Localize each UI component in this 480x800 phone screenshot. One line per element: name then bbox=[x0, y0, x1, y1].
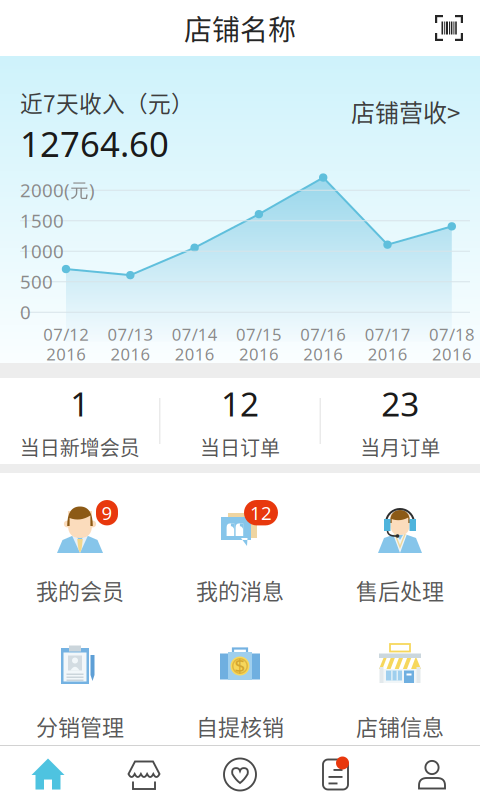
button[interactable]: 12 bbox=[160, 473, 320, 609]
staticText: 07/17 bbox=[365, 323, 411, 346]
staticText: 07/15 bbox=[236, 323, 282, 346]
staticText: 2000(元) bbox=[20, 177, 95, 203]
button[interactable]: $ bbox=[160, 609, 320, 745]
staticText: 2016 bbox=[46, 343, 86, 365]
staticText: 07/18 bbox=[429, 323, 475, 346]
staticText: 店铺名称 bbox=[184, 8, 296, 48]
staticText: 12 bbox=[250, 500, 272, 525]
staticText: 07/14 bbox=[172, 323, 218, 346]
staticText: 12 bbox=[221, 381, 259, 426]
staticText: 07/12 bbox=[43, 323, 89, 346]
staticText: 店铺营收> bbox=[351, 94, 460, 129]
staticText: 07/16 bbox=[300, 323, 346, 346]
staticText: 当日新增会员 bbox=[20, 432, 140, 461]
staticText: 2016 bbox=[239, 343, 279, 365]
staticText: 500 bbox=[20, 269, 53, 294]
button[interactable]: 订单 bbox=[288, 746, 384, 800]
staticText: 07/13 bbox=[107, 323, 153, 346]
staticText: $ bbox=[234, 653, 245, 678]
button[interactable]: 我的 bbox=[384, 746, 480, 800]
staticText: 分销管理 bbox=[36, 710, 124, 742]
staticText: 店铺信息 bbox=[356, 710, 444, 742]
button[interactable]: 首页 bbox=[0, 746, 96, 800]
button[interactable]: 售后处理 bbox=[320, 473, 480, 609]
staticText: 2016 bbox=[432, 343, 472, 365]
staticText: 2016 bbox=[368, 343, 408, 365]
button[interactable]: 店铺营收> bbox=[331, 88, 480, 135]
button[interactable]: 分销管理 bbox=[0, 609, 160, 745]
staticText: 当日订单 bbox=[200, 432, 280, 461]
staticText: 当月订单 bbox=[360, 432, 440, 461]
button[interactable]: 店铺信息 bbox=[320, 609, 480, 745]
button[interactable]: 店铺 bbox=[96, 746, 192, 800]
staticText: 1500 bbox=[20, 208, 64, 233]
button[interactable]: 9 bbox=[0, 473, 160, 609]
button[interactable]: 12 bbox=[160, 378, 320, 464]
button[interactable]: 收藏 bbox=[192, 746, 288, 800]
button[interactable]: 扫一扫 bbox=[434, 13, 480, 43]
staticText: 2016 bbox=[303, 343, 343, 365]
staticText: 我的会员 bbox=[36, 574, 124, 606]
staticText: 1000 bbox=[20, 238, 64, 264]
staticText: 2016 bbox=[110, 343, 150, 365]
button[interactable]: 1 bbox=[0, 378, 159, 464]
staticText: 0 bbox=[20, 299, 31, 325]
staticText: 23 bbox=[381, 381, 419, 426]
staticText: 9 bbox=[101, 500, 112, 525]
staticText: 我的消息 bbox=[196, 574, 284, 606]
staticText: 自提核销 bbox=[196, 710, 284, 742]
staticText: 12764.60 bbox=[20, 120, 169, 167]
staticText: 2016 bbox=[175, 343, 215, 365]
staticText: 近7天收入（元） bbox=[20, 86, 194, 119]
staticText: 1 bbox=[70, 381, 89, 426]
button[interactable]: 23 bbox=[321, 378, 480, 464]
staticText: 售后处理 bbox=[356, 574, 444, 606]
